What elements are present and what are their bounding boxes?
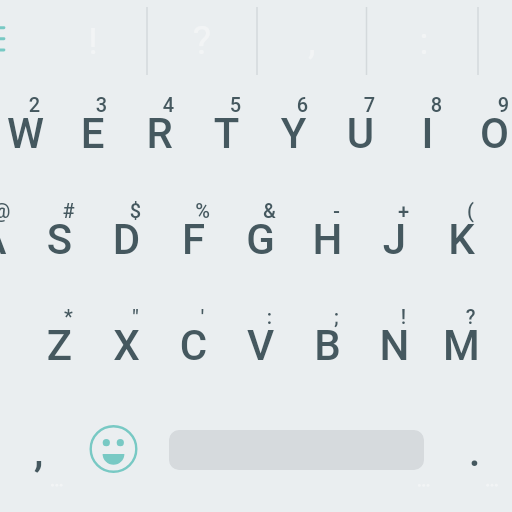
staticText: 6 [269,93,336,117]
staticText: : [236,305,303,329]
staticText: @ [0,199,35,223]
button[interactable]: 7 [327,81,394,187]
staticText: Y [260,109,327,161]
button[interactable]: - [294,187,361,293]
staticText: M [428,321,495,373]
staticText: H [294,215,361,267]
button[interactable]: 3 [59,81,126,187]
button[interactable]: Keyboard settings menu [0,14,28,62]
staticText: D [93,215,160,267]
staticText: O [461,109,512,161]
staticText: E [59,109,126,161]
staticText: N [361,321,428,373]
staticText: U [327,109,394,161]
button[interactable]: $ [93,187,160,293]
staticText: 7 [336,93,403,117]
button[interactable]: 4 [126,81,193,187]
button[interactable]: 2 [0,81,59,187]
button[interactable]: 9 [461,81,512,187]
staticText: 5 [202,93,269,117]
button[interactable]: 6 [260,81,327,187]
staticText: , [5,427,72,479]
staticText: S [26,215,93,267]
staticText: ! [370,305,437,329]
button[interactable]: ( [428,187,495,293]
staticText: T [193,109,260,161]
staticText: C [160,321,227,373]
staticText: $ [102,199,169,223]
button[interactable]: 8 [394,81,461,187]
staticText: R [126,109,193,161]
button[interactable]: ' [160,293,227,399]
staticText: K [428,215,495,267]
staticText: A [0,215,26,267]
staticText: 2 [1,93,68,117]
staticText: ( [437,199,504,223]
staticText: % [169,199,236,223]
staticText: B [294,321,361,373]
staticText: - [303,199,370,223]
staticText: F [160,215,227,267]
staticText: ' [169,305,236,329]
staticText: + [370,199,437,223]
staticText: 9 [470,93,512,117]
button[interactable]: * [26,293,93,399]
staticText: I [394,109,461,161]
staticText: 8 [403,93,470,117]
button[interactable]: " [93,293,160,399]
staticText: 3 [68,93,135,117]
button[interactable]: + [361,187,428,293]
button[interactable]: # [26,187,93,293]
button[interactable]: ? [428,293,495,399]
button[interactable]: : [227,293,294,399]
staticText: G [227,215,294,267]
staticText: J [361,215,428,267]
button[interactable]: & [227,187,294,293]
button[interactable]: @ [0,187,26,293]
button[interactable]: . [441,399,508,505]
staticText: Z [26,321,93,373]
staticText: . [441,427,508,479]
button[interactable]: 5 [193,81,260,187]
staticText: * [35,305,102,329]
staticText: X [93,321,160,373]
staticText: W [0,109,59,161]
staticText: & [236,199,303,223]
button[interactable]: ; [294,293,361,399]
staticText: 4 [135,93,202,117]
staticText: V [227,321,294,373]
staticText: # [35,199,102,223]
button[interactable]: Emoji keyboard [80,396,147,502]
button[interactable]: , [5,399,72,505]
staticText: " [102,305,169,329]
button[interactable]: % [160,187,227,293]
staticText: ; [303,305,370,329]
button[interactable]: ! [361,293,428,399]
staticText: ? [437,305,504,329]
